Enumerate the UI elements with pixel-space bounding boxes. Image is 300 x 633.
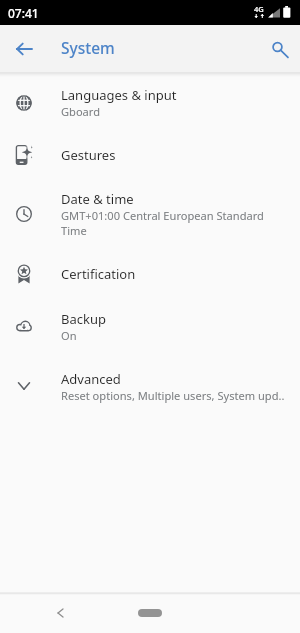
- staticText: Reset options, Multiple users, System up…: [61, 388, 284, 403]
- staticText: GMT+01:00 Central European Standard Time: [61, 208, 284, 238]
- button[interactable]: Backup: [0, 296, 300, 356]
- button[interactable]: Search: [259, 29, 299, 69]
- button[interactable]: Gestures: [0, 133, 300, 177]
- button[interactable]: Date & time: [0, 177, 300, 251]
- button[interactable]: Back: [46, 599, 74, 627]
- button[interactable]: Advanced: [0, 356, 300, 416]
- staticText: Date & time: [61, 190, 134, 208]
- staticText: Certification: [61, 265, 136, 283]
- staticText: On: [61, 328, 77, 343]
- staticText: 4G: [254, 4, 264, 14]
- button[interactable]: Back: [4, 29, 44, 69]
- button[interactable]: Certification: [0, 251, 300, 296]
- staticText: Gboard: [61, 104, 101, 119]
- button[interactable]: Languages & input: [0, 72, 300, 133]
- staticText: Gestures: [61, 146, 116, 164]
- staticText: 07:41: [8, 5, 39, 21]
- staticText: Advanced: [61, 370, 121, 388]
- button[interactable]: Home: [138, 609, 162, 617]
- staticText: Backup: [61, 310, 106, 328]
- staticText: Languages & input: [61, 86, 177, 104]
- staticText: System: [61, 37, 115, 58]
